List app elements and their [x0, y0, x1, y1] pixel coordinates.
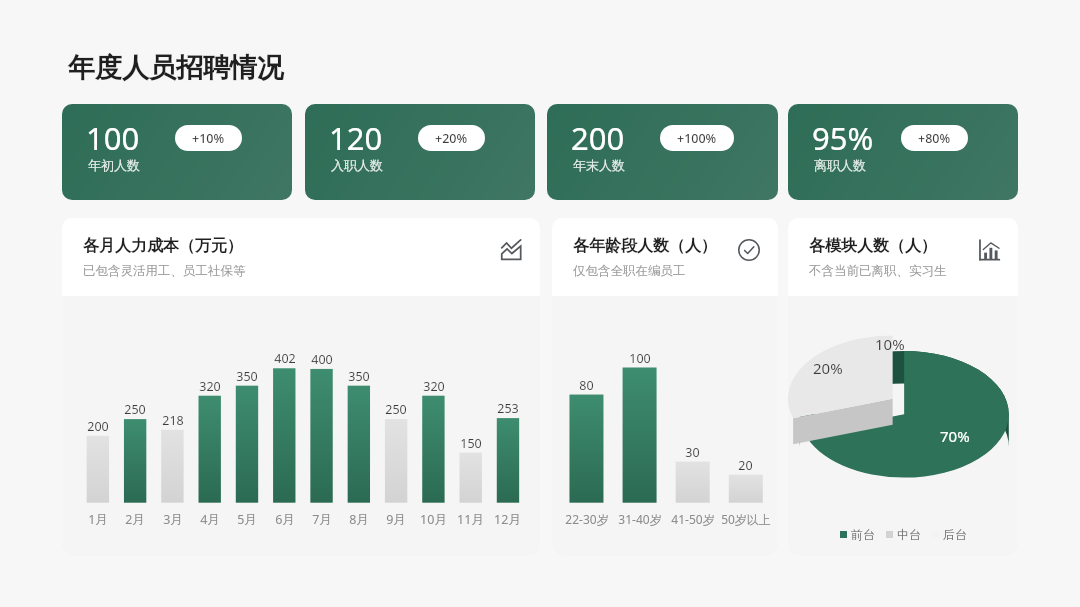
staticText: 4月 [200, 511, 220, 528]
button[interactable]: 各年龄段人数（人） [552, 218, 778, 556]
staticText: 20 [738, 457, 753, 474]
staticText: 10月 [420, 511, 447, 528]
button[interactable]: +100% [677, 125, 717, 151]
staticText: 250 [385, 401, 407, 418]
staticText: 前台 [851, 527, 875, 542]
staticText: 95% [812, 117, 874, 159]
staticText: 200 [87, 418, 109, 435]
staticText: +100% [677, 130, 717, 147]
staticText: 150 [460, 435, 482, 452]
staticText: 320 [199, 378, 221, 395]
staticText: 41-50岁 [671, 511, 715, 527]
button[interactable]: 120 [305, 104, 535, 200]
staticText: 不含当前已离职、实习生 [809, 263, 947, 279]
button[interactable]: 100 [62, 104, 292, 200]
button[interactable]: Bar chart [974, 235, 1004, 265]
staticText: 320 [423, 378, 445, 395]
staticText: 12月 [494, 511, 521, 528]
staticText: 218 [162, 412, 184, 429]
staticText: 20% [813, 358, 843, 378]
staticText: 1月 [88, 511, 108, 528]
staticText: 入职人数 [331, 157, 383, 173]
staticText: 后台 [943, 527, 967, 542]
staticText: 22-30岁 [565, 511, 609, 527]
staticText: 6月 [275, 511, 295, 528]
staticText: 200 [571, 117, 625, 159]
staticText: 10% [875, 334, 905, 354]
staticText: 11月 [457, 511, 484, 528]
staticText: +10% [192, 130, 225, 147]
staticText: 31-40岁 [618, 511, 662, 527]
button[interactable]: 中台 [886, 527, 921, 542]
staticText: 100 [629, 350, 651, 367]
button[interactable]: 200 [547, 104, 778, 200]
staticText: 30 [685, 444, 700, 461]
button[interactable]: 各模块人数（人） [788, 218, 1018, 556]
staticText: 8月 [349, 511, 369, 528]
staticText: 离职人数 [814, 157, 866, 173]
staticText: 250 [124, 401, 146, 418]
button[interactable]: Verified [734, 235, 764, 265]
staticText: 253 [497, 400, 519, 417]
staticText: 各模块人数（人） [809, 236, 937, 256]
button[interactable]: Area chart [496, 235, 526, 265]
staticText: 年初人数 [88, 157, 140, 173]
button[interactable]: +20% [435, 125, 468, 151]
staticText: 80 [579, 377, 594, 394]
staticText: 年度人员招聘情况 [68, 51, 284, 85]
staticText: 仅包含全职在编员工 [573, 263, 686, 279]
staticText: 350 [236, 368, 258, 385]
staticText: 2月 [125, 511, 145, 528]
button[interactable]: 前台 [840, 527, 875, 542]
staticText: 120 [329, 117, 383, 159]
staticText: 中台 [897, 527, 921, 542]
staticText: 年末人数 [573, 157, 625, 173]
staticText: 7月 [312, 511, 332, 528]
staticText: 400 [311, 351, 333, 368]
button[interactable]: 95% [788, 104, 1018, 200]
staticText: 5月 [237, 511, 257, 528]
staticText: 70% [940, 426, 970, 446]
staticText: +20% [435, 130, 468, 147]
button[interactable]: +80% [918, 125, 951, 151]
staticText: 已包含灵活用工、员工社保等 [83, 263, 246, 279]
button[interactable]: 后台 [932, 527, 967, 542]
button[interactable]: 各月人力成本（万元） [62, 218, 540, 556]
staticText: 9月 [386, 511, 406, 528]
staticText: 各月人力成本（万元） [83, 236, 243, 256]
staticText: 402 [274, 350, 296, 367]
staticText: +80% [918, 130, 951, 147]
staticText: 各年龄段人数（人） [573, 236, 717, 256]
button[interactable]: +10% [192, 125, 225, 151]
staticText: 50岁以上 [721, 511, 771, 527]
staticText: 350 [348, 368, 370, 385]
staticText: 100 [86, 117, 140, 159]
staticText: 3月 [163, 511, 183, 528]
